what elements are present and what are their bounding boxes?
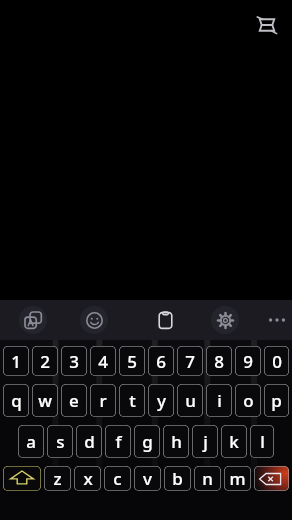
staticText: j bbox=[203, 430, 208, 453]
button[interactable]: p bbox=[264, 384, 289, 417]
button[interactable]: 8 bbox=[206, 346, 232, 376]
staticText: v bbox=[143, 467, 152, 490]
staticText: l bbox=[260, 430, 265, 453]
staticText: k bbox=[229, 430, 239, 453]
button[interactable]: Backspace bbox=[254, 466, 289, 491]
button[interactable]: z bbox=[44, 466, 71, 491]
button[interactable]: j bbox=[192, 425, 218, 458]
staticText: a bbox=[26, 430, 36, 453]
button[interactable]: Translate bbox=[15, 300, 51, 340]
button[interactable]: 4 bbox=[90, 346, 116, 376]
staticText: r bbox=[99, 389, 107, 412]
button[interactable]: More bbox=[262, 300, 292, 340]
staticText: d bbox=[84, 430, 95, 453]
staticText: g bbox=[142, 430, 153, 453]
button[interactable]: CapCut bbox=[254, 12, 280, 38]
button[interactable]: d bbox=[76, 425, 102, 458]
button[interactable]: g bbox=[134, 425, 160, 458]
staticText: 2 bbox=[40, 350, 50, 373]
staticText: z bbox=[53, 467, 62, 490]
staticText: 5 bbox=[127, 350, 137, 373]
button[interactable]: h bbox=[163, 425, 189, 458]
button[interactable]: Clipboard bbox=[147, 300, 183, 340]
staticText: 1 bbox=[11, 350, 21, 373]
button[interactable]: 9 bbox=[235, 346, 261, 376]
staticText: e bbox=[69, 389, 79, 412]
staticText: n bbox=[202, 467, 213, 490]
staticText: 7 bbox=[185, 350, 195, 373]
button[interactable]: i bbox=[206, 384, 232, 417]
button[interactable]: c bbox=[104, 466, 131, 491]
button[interactable]: Emoji bbox=[76, 300, 112, 340]
button[interactable]: e bbox=[61, 384, 87, 417]
button[interactable]: a bbox=[18, 425, 44, 458]
button[interactable]: w bbox=[32, 384, 58, 417]
button[interactable]: b bbox=[164, 466, 191, 491]
staticText: h bbox=[171, 430, 182, 453]
button[interactable]: 1 bbox=[3, 346, 29, 376]
button[interactable]: f bbox=[105, 425, 131, 458]
button[interactable]: r bbox=[90, 384, 116, 417]
staticText: f bbox=[115, 430, 122, 453]
staticText: t bbox=[129, 389, 136, 412]
staticText: y bbox=[157, 389, 166, 412]
button[interactable]: l bbox=[250, 425, 274, 458]
button[interactable]: m bbox=[224, 466, 251, 491]
staticText: x bbox=[83, 467, 93, 490]
staticText: 3 bbox=[69, 350, 79, 373]
staticText: q bbox=[11, 389, 22, 412]
button[interactable]: q bbox=[3, 384, 29, 417]
staticText: 6 bbox=[156, 350, 166, 373]
button[interactable]: n bbox=[194, 466, 221, 491]
staticText: 8 bbox=[214, 350, 224, 373]
button[interactable]: 3 bbox=[61, 346, 87, 376]
staticText: b bbox=[172, 467, 183, 490]
staticText: w bbox=[38, 389, 52, 412]
button[interactable]: y bbox=[148, 384, 174, 417]
staticText: 4 bbox=[98, 350, 108, 373]
button[interactable]: 5 bbox=[119, 346, 145, 376]
button[interactable]: s bbox=[47, 425, 73, 458]
staticText: c bbox=[113, 467, 122, 490]
staticText: i bbox=[217, 389, 222, 412]
button[interactable]: Settings bbox=[207, 300, 243, 340]
button[interactable]: o bbox=[235, 384, 261, 417]
staticText: p bbox=[271, 389, 282, 412]
staticText: o bbox=[243, 389, 254, 412]
staticText: u bbox=[185, 389, 196, 412]
staticText: s bbox=[56, 430, 65, 453]
button[interactable]: v bbox=[134, 466, 161, 491]
button[interactable]: 6 bbox=[148, 346, 174, 376]
button[interactable]: 0 bbox=[264, 346, 289, 376]
button[interactable]: Shift bbox=[3, 466, 41, 491]
button[interactable]: x bbox=[74, 466, 101, 491]
button[interactable]: 2 bbox=[32, 346, 58, 376]
button[interactable]: u bbox=[177, 384, 203, 417]
button[interactable]: k bbox=[221, 425, 247, 458]
button[interactable]: t bbox=[119, 384, 145, 417]
staticText: 0 bbox=[272, 350, 282, 373]
staticText: 9 bbox=[243, 350, 253, 373]
button[interactable]: 7 bbox=[177, 346, 203, 376]
staticText: m bbox=[229, 467, 246, 490]
